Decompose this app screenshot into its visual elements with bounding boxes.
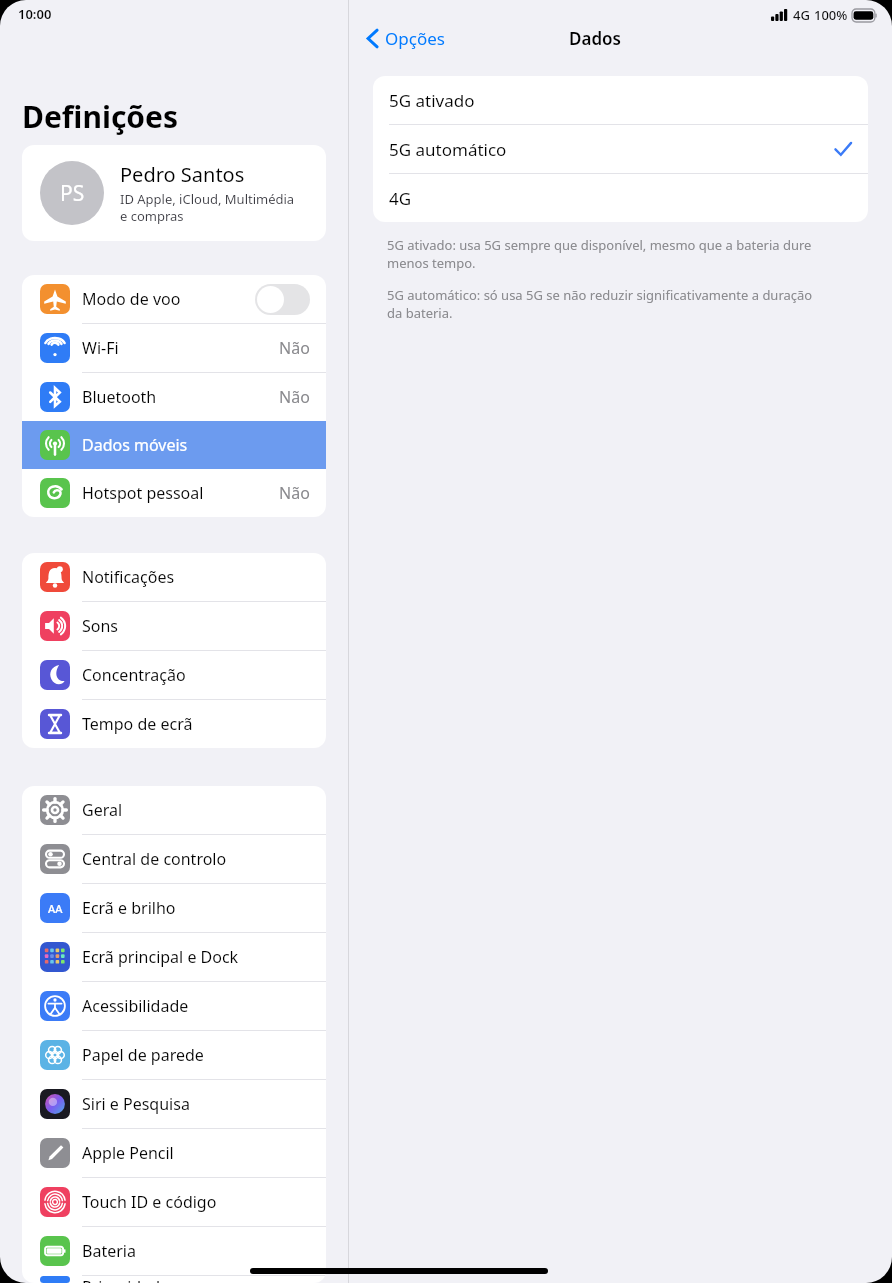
staticText: Concentração (82, 664, 186, 686)
staticText: Não (279, 386, 310, 408)
staticText: 5G automático (389, 138, 507, 161)
other: Selecionado (834, 140, 852, 158)
staticText: Definições (22, 96, 179, 137)
staticText: Wi-Fi (82, 337, 119, 359)
button[interactable]: Wi-Fi (22, 324, 326, 372)
staticText: Notificações (82, 566, 175, 588)
staticText: Opções (385, 27, 445, 50)
button[interactable]: Geral (22, 786, 326, 834)
button[interactable]: Tempo de ecrã (22, 700, 326, 748)
button[interactable]: 5G ativado (373, 76, 868, 124)
staticText: Ecrã e brilho (82, 897, 176, 919)
staticText: Não (279, 337, 310, 359)
staticText: Bluetooth (82, 386, 157, 408)
button[interactable]: 5G automático (373, 125, 868, 173)
button[interactable]: Sons (22, 602, 326, 650)
button[interactable]: Siri e Pesquisa (22, 1080, 326, 1128)
button[interactable]: Touch ID e código (22, 1178, 326, 1226)
staticText: Central de controlo (82, 848, 227, 870)
staticText: Bateria (82, 1240, 136, 1262)
button[interactable]: Papel de parede (22, 1031, 326, 1079)
button[interactable]: Modo de voo (22, 275, 326, 323)
staticText: 100% (814, 6, 848, 24)
staticText: Dados móveis (82, 434, 188, 456)
staticText: 4G (793, 6, 810, 24)
staticText: 5G ativado: usa 5G sempre que disponível… (387, 236, 812, 272)
staticText: Papel de parede (82, 1044, 204, 1066)
button[interactable]: Dados móveis (22, 421, 326, 469)
staticText: Tempo de ecrã (82, 713, 193, 735)
button[interactable]: Opções (363, 23, 449, 54)
button[interactable]: Central de controlo (22, 835, 326, 883)
button[interactable]: PS (22, 145, 326, 241)
staticText: Privacidade (82, 1276, 170, 1283)
staticText: 4G (389, 187, 412, 210)
staticText: Geral (82, 799, 123, 821)
staticText: Sons (82, 615, 119, 637)
button[interactable]: Privacidade (22, 1276, 326, 1283)
button[interactable]: Bateria (22, 1227, 326, 1275)
staticText: Hotspot pessoal (82, 482, 204, 504)
staticText: Dados (569, 27, 621, 50)
staticText: AA (48, 901, 63, 916)
button[interactable]: Concentração (22, 651, 326, 699)
staticText: Siri e Pesquisa (82, 1093, 190, 1115)
staticText: PS (60, 179, 85, 208)
button[interactable]: Bluetooth (22, 373, 326, 421)
button[interactable]: Ecrã principal e Dock (22, 933, 326, 981)
staticText: Modo de voo (82, 288, 181, 310)
staticText: Acessibilidade (82, 995, 189, 1017)
staticText: 5G automático: só usa 5G se não reduzir … (387, 286, 813, 322)
button[interactable]: 4G (373, 174, 868, 222)
staticText: 10:00 (18, 5, 52, 23)
staticText: Não (279, 482, 310, 504)
staticText: Apple Pencil (82, 1142, 174, 1164)
button[interactable]: Acessibilidade (22, 982, 326, 1030)
button[interactable]: Hotspot pessoal (22, 469, 326, 517)
staticText: Pedro Santos (120, 161, 245, 188)
button[interactable]: AA (22, 884, 326, 932)
staticText: 5G ativado (389, 89, 475, 112)
staticText: ID Apple, iCloud, Multimédia e compras (120, 190, 295, 225)
button[interactable]: Notificações (22, 553, 326, 601)
staticText: Ecrã principal e Dock (82, 946, 239, 968)
staticText: Touch ID e código (82, 1191, 217, 1213)
button[interactable]: Apple Pencil (22, 1129, 326, 1177)
